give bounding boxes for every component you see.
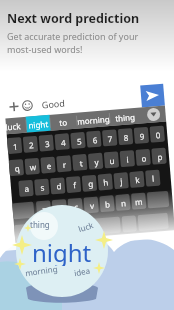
staticText: e — [46, 160, 52, 171]
staticText: night — [32, 236, 92, 266]
staticText: 0 — [155, 129, 161, 140]
staticText: 2 — [29, 139, 34, 151]
staticText: luck — [77, 219, 95, 234]
staticText: 1 — [13, 140, 18, 152]
staticText: luck — [5, 120, 22, 132]
staticText: j — [120, 175, 124, 186]
staticText: Next word prediction — [7, 10, 140, 27]
staticText: y — [94, 156, 100, 167]
staticText: Get accurate prediction of your — [7, 30, 139, 42]
staticText: 8 — [123, 132, 129, 143]
staticText: b — [105, 198, 110, 210]
staticText: l — [152, 173, 155, 184]
staticText: u — [109, 155, 115, 166]
staticText: 3 — [44, 138, 50, 149]
staticText: t — [79, 157, 83, 169]
staticText: z — [42, 203, 47, 215]
staticText: thing — [30, 219, 50, 230]
staticText: x — [58, 202, 64, 213]
staticText: a — [24, 183, 30, 194]
staticText: h — [103, 176, 109, 188]
staticText: most-used words! — [7, 43, 83, 55]
staticText: d — [56, 180, 62, 192]
staticText: morning — [24, 263, 59, 278]
staticText: 7 — [107, 133, 113, 144]
staticText: w — [29, 161, 37, 173]
staticText: o — [141, 152, 147, 164]
staticText: s — [40, 181, 45, 193]
staticText: f — [73, 179, 77, 190]
staticText: thing — [115, 111, 135, 124]
staticText: 9 — [139, 130, 145, 142]
staticText: night — [28, 118, 49, 131]
staticText: m — [134, 196, 143, 207]
staticText: Good — [41, 97, 65, 110]
staticText: 4 — [60, 137, 66, 148]
staticText: v — [90, 199, 95, 211]
staticText: p — [157, 151, 163, 162]
staticText: c — [74, 201, 79, 212]
staticText: n — [120, 197, 126, 208]
staticText: i — [126, 154, 130, 165]
staticText: g — [88, 178, 94, 189]
staticText: 5 — [76, 135, 82, 147]
staticText: to — [59, 116, 68, 128]
staticText: r — [62, 159, 67, 170]
staticText: k — [135, 174, 141, 185]
staticText: q — [14, 162, 20, 174]
staticText: idea — [73, 265, 91, 278]
staticText: morning — [77, 113, 111, 127]
staticText: 6 — [92, 134, 98, 145]
